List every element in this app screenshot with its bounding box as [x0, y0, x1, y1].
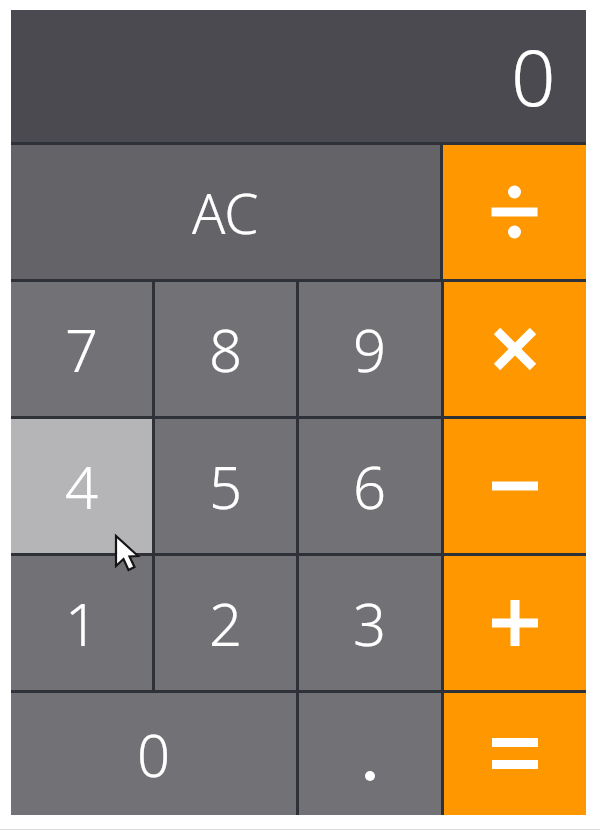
staticText: 0: [511, 23, 556, 129]
staticText: 3: [353, 584, 387, 663]
staticText: 8: [209, 310, 243, 389]
button[interactable]: 5: [155, 419, 296, 553]
button[interactable]: 2: [155, 556, 296, 690]
button[interactable]: Add: [444, 556, 586, 690]
staticText: 6: [353, 447, 387, 526]
staticText: 9: [353, 310, 387, 389]
staticText: 5: [209, 447, 243, 526]
button[interactable]: AC: [11, 145, 440, 279]
button[interactable]: 0: [11, 693, 296, 815]
button[interactable]: 1: [11, 556, 152, 690]
staticText: AC: [192, 175, 259, 250]
button[interactable]: 6: [299, 419, 441, 553]
staticText: 7: [65, 310, 99, 389]
button[interactable]: 8: [155, 282, 296, 416]
button[interactable]: Subtract: [444, 419, 586, 553]
button[interactable]: 7: [11, 282, 152, 416]
button[interactable]: 4: [11, 419, 152, 553]
button[interactable]: Decimal point: [299, 693, 441, 815]
button[interactable]: Divide: [443, 145, 586, 279]
button[interactable]: 3: [299, 556, 441, 690]
staticText: 1: [65, 584, 99, 663]
button[interactable]: Multiply: [444, 282, 586, 416]
button[interactable]: Equals: [444, 693, 586, 815]
staticText: 4: [65, 447, 99, 526]
staticText: 0: [137, 715, 171, 794]
staticText: 2: [209, 584, 243, 663]
button[interactable]: 9: [299, 282, 441, 416]
